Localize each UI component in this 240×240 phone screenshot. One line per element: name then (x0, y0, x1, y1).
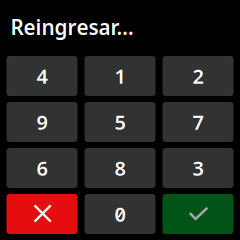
staticText: 6 (36, 154, 47, 182)
staticText: 2 (192, 62, 203, 90)
button[interactable]: 5 (84, 102, 155, 142)
button[interactable]: 0 (84, 194, 155, 234)
staticText: 4 (36, 62, 47, 90)
button[interactable]: 1 (84, 56, 155, 96)
staticText: 7 (192, 108, 203, 136)
button[interactable]: Confirm (162, 194, 233, 234)
button[interactable]: Cancel (6, 194, 77, 234)
staticText: 3 (192, 154, 203, 182)
button[interactable]: 6 (6, 148, 77, 188)
button[interactable]: 4 (6, 56, 77, 96)
button[interactable]: 3 (162, 148, 233, 188)
staticText: 1 (114, 62, 125, 90)
staticText: 0 (114, 200, 125, 228)
staticText: 9 (36, 108, 47, 136)
button[interactable]: 7 (162, 102, 233, 142)
staticText: Reingresar… (10, 13, 133, 41)
button[interactable]: 9 (6, 102, 77, 142)
button[interactable]: 8 (84, 148, 155, 188)
staticText: 8 (114, 154, 125, 182)
staticText: 5 (114, 108, 125, 136)
button[interactable]: 2 (162, 56, 233, 96)
